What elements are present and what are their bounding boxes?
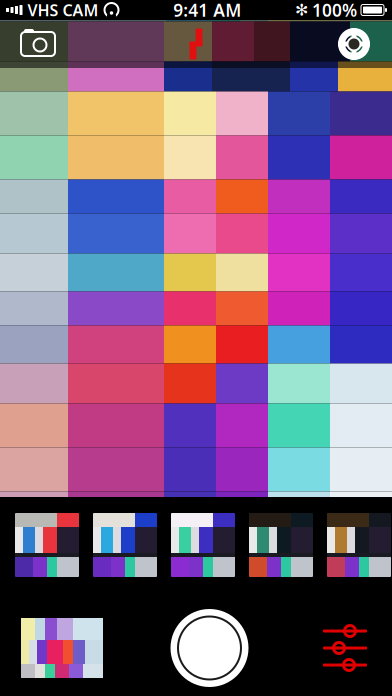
button[interactable]: Shutter	[166, 605, 252, 691]
staticText: 100%	[312, 0, 357, 21]
button[interactable]: Photo 3	[171, 513, 235, 577]
button[interactable]: Settings	[324, 20, 384, 68]
button[interactable]: Last photo	[0, 618, 113, 678]
button[interactable]: Adjustments	[306, 619, 392, 677]
staticText: VHS CAM	[27, 0, 98, 21]
button[interactable]: Photo 4	[249, 513, 313, 577]
staticText: ✻	[295, 1, 308, 19]
button[interactable]: Flash	[168, 20, 224, 68]
button[interactable]: Photo 1	[15, 513, 79, 577]
button[interactable]: Photo 2	[93, 513, 157, 577]
button[interactable]: Photo 5	[327, 513, 391, 577]
staticText: 9:41 AM	[173, 0, 241, 21]
button[interactable]: Switch camera	[8, 20, 68, 68]
